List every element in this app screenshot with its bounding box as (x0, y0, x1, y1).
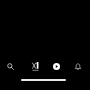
button[interactable]: Play (46, 58, 67, 77)
button[interactable]: Notifications (67, 58, 90, 77)
button[interactable]: X1 Guide (21, 58, 46, 77)
button[interactable]: Search (0, 58, 21, 77)
